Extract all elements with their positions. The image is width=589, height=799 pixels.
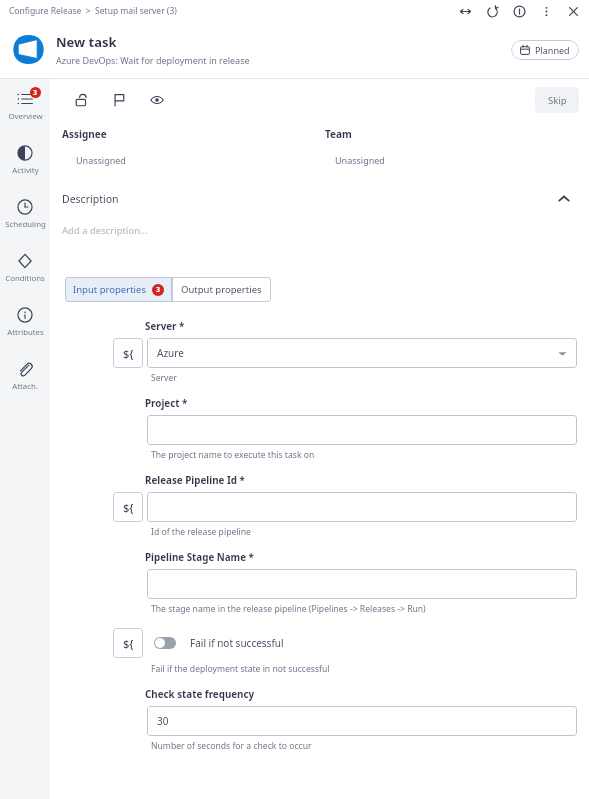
staticText: 3 [156, 285, 161, 295]
button[interactable] [147, 569, 577, 599]
button[interactable]: Lock [72, 91, 90, 109]
staticText: Id of the release pipeline [151, 526, 251, 538]
staticText: Release Pipeline Id * [145, 474, 245, 487]
staticText: Pipeline Stage Name * [145, 551, 254, 564]
button[interactable]: Skip [535, 87, 579, 113]
staticText: Skip [548, 94, 567, 107]
staticText: ${ [123, 500, 134, 515]
staticText: Unassigned [76, 154, 126, 166]
staticText: Project * [145, 397, 188, 410]
button[interactable]: Info [511, 3, 527, 19]
button[interactable]: Conditions [0, 241, 50, 295]
button[interactable]: Insert variable [113, 338, 143, 368]
button[interactable]: Attributes [0, 295, 50, 349]
staticText: Planned [535, 44, 570, 56]
staticText: New task [56, 33, 117, 51]
button[interactable]: Close [565, 3, 581, 19]
staticText: Input properties [73, 283, 146, 296]
staticText: Attach. [12, 381, 38, 392]
staticText: ${ [123, 346, 134, 361]
staticText: 3 [33, 88, 38, 98]
staticText: Configure Release > Setup mail server (3… [9, 5, 177, 17]
staticText: The project name to execute this task on [151, 449, 315, 461]
button[interactable]: Attach. [0, 349, 50, 403]
button[interactable]: Output properties [172, 277, 271, 302]
staticText: Azure DevOps: Wait for deployment in rel… [56, 54, 250, 66]
staticText: Activity [12, 165, 39, 176]
staticText: Add a description... [62, 224, 148, 237]
button[interactable]: Planned [511, 40, 579, 60]
staticText: Assignee [62, 127, 107, 141]
button[interactable]: Activity [0, 133, 50, 187]
staticText: Team [325, 127, 352, 141]
button[interactable]: Resize [457, 3, 473, 19]
button[interactable]: 30 [147, 706, 577, 736]
staticText: Attributes [7, 327, 44, 338]
staticText: Azure [157, 346, 184, 360]
staticText: Server [151, 372, 177, 384]
staticText: Description [62, 192, 119, 206]
staticText: Server * [145, 320, 185, 333]
button[interactable]: Insert variable [113, 628, 143, 658]
staticText: Check state frequency [145, 688, 255, 701]
staticText: Number of seconds for a check to occur [151, 740, 312, 752]
staticText: Overview [8, 111, 43, 122]
button[interactable]: 3 [0, 79, 50, 133]
button[interactable]: Watch [148, 91, 166, 109]
button[interactable]: Description [50, 188, 589, 210]
staticText: 30 [157, 714, 169, 728]
staticText: Output properties [181, 283, 262, 296]
button[interactable] [147, 415, 577, 445]
staticText: Scheduling [5, 219, 46, 230]
button[interactable]: Scheduling [0, 187, 50, 241]
button[interactable]: Refresh [484, 3, 500, 19]
staticText: Fail if not successful [190, 636, 284, 650]
staticText: The stage name in the release pipeline (… [151, 603, 426, 615]
staticText: Unassigned [335, 154, 385, 166]
button[interactable]: Insert variable [113, 492, 143, 522]
button[interactable]: Flag [110, 91, 128, 109]
staticText: ${ [123, 636, 134, 651]
button[interactable]: Azure [147, 338, 577, 368]
staticText: Fail if the deployment state in not succ… [151, 663, 330, 675]
button[interactable] [147, 492, 577, 522]
staticText: Conditions [5, 273, 45, 284]
button[interactable]: Input properties [65, 277, 172, 302]
button[interactable]: Fail if not successful [154, 636, 284, 650]
button[interactable]: More options [538, 3, 554, 19]
